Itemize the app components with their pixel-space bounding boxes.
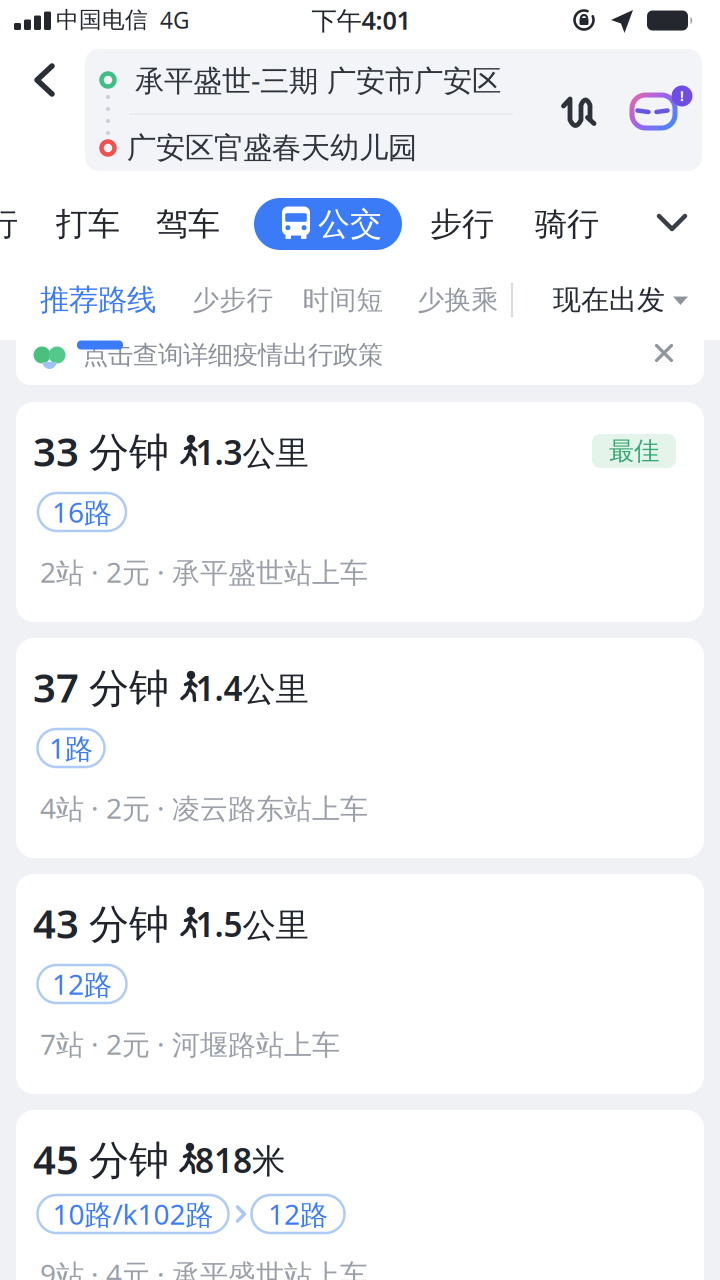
button[interactable]: 广安区官盛春天幼儿园: [127, 130, 417, 166]
staticText: 1.3公里: [195, 430, 308, 474]
button[interactable]: 交换起终点: [562, 98, 595, 126]
button[interactable]: 更多出行方式: [0, 204, 18, 244]
staticText: 9站 · 4元 · 承平盛世站上车: [40, 1255, 368, 1280]
button[interactable]: 时间短: [302, 284, 383, 316]
button[interactable]: 少换乘: [417, 284, 498, 316]
staticText: 2站 · 2元 · 承平盛世站上车: [40, 553, 368, 591]
button[interactable]: 现在出发: [552, 283, 692, 317]
button[interactable]: 承平盛世-三期 广安市广安区: [135, 60, 501, 99]
staticText: 4G: [160, 5, 190, 35]
staticText: 43 分钟: [33, 896, 169, 949]
staticText: !: [680, 87, 684, 105]
staticText: 最佳: [609, 435, 659, 466]
staticText: 37 分钟: [33, 660, 169, 713]
staticText: 时间短: [302, 284, 383, 316]
staticText: 4站 · 2元 · 凌云路东站上车: [40, 789, 368, 827]
button[interactable]: 智能助手: [617, 78, 693, 142]
staticText: 1.5公里: [195, 902, 308, 946]
staticText: 打车: [56, 204, 120, 244]
staticText: 公交: [318, 204, 382, 244]
button[interactable]: 关闭: [656, 345, 671, 360]
button[interactable]: [16, 638, 704, 858]
staticText: 点击查询详细疫情出行政策: [83, 339, 383, 370]
staticText: 推荐路线: [40, 282, 156, 318]
button[interactable]: 更多出行方式: [657, 214, 687, 232]
button[interactable]: 驾车: [156, 204, 220, 244]
staticText: 45 分钟: [33, 1132, 169, 1185]
staticText: 10路/k102路: [52, 1195, 213, 1233]
button[interactable]: 点击查询详细疫情出行政策: [83, 339, 383, 370]
button[interactable]: 推荐路线: [40, 282, 156, 318]
button[interactable]: 骑行: [535, 204, 599, 244]
staticText: 818米: [195, 1138, 285, 1182]
staticText: 承平盛世-三期 广安市广安区: [135, 60, 501, 99]
staticText: 少换乘: [417, 284, 498, 316]
button[interactable]: [16, 874, 704, 1094]
button[interactable]: 返回: [30, 63, 64, 97]
button[interactable]: 打车: [56, 204, 120, 244]
button[interactable]: 步行: [430, 204, 494, 244]
staticText: 步行: [430, 204, 494, 244]
staticText: 1.4公里: [195, 666, 308, 710]
button[interactable]: 少步行: [192, 284, 273, 316]
staticText: 现在出发: [553, 283, 665, 317]
staticText: 驾车: [156, 204, 220, 244]
staticText: 16路: [52, 493, 112, 531]
button[interactable]: 公交: [254, 198, 402, 250]
staticText: 1路: [49, 729, 93, 767]
staticText: 中国电信: [56, 6, 148, 34]
button[interactable]: [16, 402, 704, 622]
staticText: 少步行: [192, 284, 273, 316]
staticText: 下午4:01: [311, 3, 410, 37]
staticText: 骑行: [535, 204, 599, 244]
staticText: 广安区官盛春天幼儿园: [127, 130, 417, 166]
staticText: 7站 · 2元 · 河堰路站上车: [40, 1025, 340, 1063]
staticText: 33 分钟: [33, 424, 169, 477]
button[interactable]: [16, 1110, 704, 1280]
staticText: 12路: [268, 1195, 328, 1233]
staticText: 12路: [52, 965, 112, 1003]
staticText: 行: [0, 204, 18, 244]
